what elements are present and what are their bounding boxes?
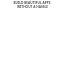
staticText: WITHOUT A HASSLE <box>17 5 48 9</box>
staticText: BUILD BEAUTIFUL APPS <box>13 1 51 5</box>
